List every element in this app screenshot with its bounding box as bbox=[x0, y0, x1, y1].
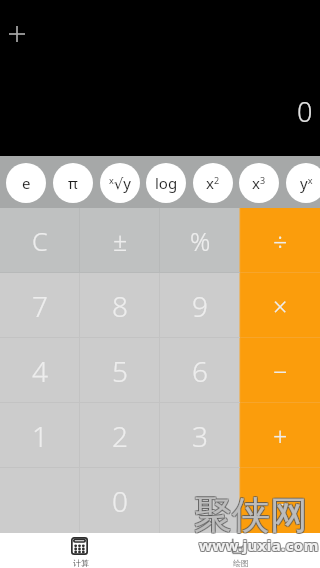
staticText: 1 bbox=[32, 417, 48, 455]
staticText: e bbox=[22, 173, 31, 193]
staticText: 聚侠网 bbox=[193, 491, 307, 539]
button[interactable]: x2 bbox=[193, 163, 233, 203]
staticText: log bbox=[155, 173, 178, 193]
button[interactable]: = bbox=[240, 468, 320, 533]
staticText: π bbox=[68, 173, 78, 193]
button[interactable]: π bbox=[53, 163, 93, 203]
button[interactable]: 1 bbox=[0, 403, 80, 468]
button[interactable]: 计算 bbox=[0, 533, 160, 568]
staticText: 3 bbox=[192, 417, 208, 455]
staticText: www.juxia.com bbox=[200, 534, 320, 554]
staticText: 0 bbox=[297, 93, 313, 130]
staticText: 0 bbox=[112, 482, 128, 520]
staticText: x√y bbox=[109, 173, 131, 193]
staticText: 5 bbox=[112, 352, 128, 390]
staticText: 2 bbox=[112, 417, 128, 455]
staticText: www.juxia.com bbox=[199, 534, 319, 554]
staticText: 7 bbox=[32, 287, 48, 325]
button[interactable]: ± bbox=[80, 208, 160, 273]
staticText: www.juxia.com bbox=[200, 536, 320, 556]
button[interactable]: x√y bbox=[100, 163, 140, 203]
staticText: 6 bbox=[192, 352, 208, 390]
button[interactable]: 0 bbox=[80, 468, 160, 533]
staticText: www.juxia.com bbox=[199, 535, 319, 555]
staticText: www.juxia.com bbox=[198, 536, 318, 556]
button[interactable]: + bbox=[240, 403, 320, 468]
staticText: C bbox=[32, 224, 48, 258]
staticText: 9 bbox=[192, 287, 208, 325]
staticText: ÷ bbox=[273, 224, 288, 258]
button[interactable]: 4 bbox=[0, 338, 80, 403]
staticText: × bbox=[273, 289, 288, 323]
button[interactable]: e bbox=[6, 163, 46, 203]
button[interactable]: 9 bbox=[160, 273, 240, 338]
button[interactable]: log bbox=[146, 163, 186, 203]
staticText: 聚侠网 bbox=[194, 490, 308, 538]
button[interactable]: 5 bbox=[80, 338, 160, 403]
button[interactable]: 6 bbox=[160, 338, 240, 403]
staticText: 4 bbox=[32, 352, 48, 390]
staticText: 聚侠网 bbox=[195, 491, 309, 539]
staticText: 8 bbox=[112, 287, 128, 325]
staticText: www.juxia.com bbox=[198, 535, 318, 555]
staticText: yx bbox=[300, 173, 313, 193]
button[interactable]: Add to history bbox=[5, 22, 28, 45]
staticText: 聚侠网 bbox=[194, 492, 308, 540]
staticText: 聚侠网 bbox=[195, 492, 309, 540]
staticText: www.juxia.com bbox=[198, 534, 318, 554]
staticText: = bbox=[273, 484, 288, 518]
staticText: ± bbox=[113, 224, 128, 258]
staticText: 计算 bbox=[73, 558, 89, 568]
button[interactable]: % bbox=[160, 208, 240, 273]
staticText: 聚侠网 bbox=[194, 491, 308, 539]
staticText: x2 bbox=[206, 173, 220, 193]
button[interactable]: 2 bbox=[80, 403, 160, 468]
button[interactable]: 8 bbox=[80, 273, 160, 338]
staticText: 绘图 bbox=[233, 558, 249, 568]
button[interactable]: yx bbox=[286, 163, 320, 203]
button[interactable]: x3 bbox=[239, 163, 279, 203]
staticText: 聚侠网 bbox=[193, 492, 307, 540]
button[interactable] bbox=[160, 468, 240, 533]
button[interactable]: − bbox=[240, 338, 320, 403]
button[interactable]: ÷ bbox=[240, 208, 320, 273]
button[interactable]: C bbox=[0, 208, 80, 273]
button[interactable]: 7 bbox=[0, 273, 80, 338]
staticText: www.juxia.com bbox=[199, 536, 319, 556]
staticText: − bbox=[273, 354, 288, 388]
staticText: % bbox=[190, 224, 211, 258]
staticText: x3 bbox=[252, 173, 266, 193]
staticText: + bbox=[273, 419, 288, 453]
staticText: www.juxia.com bbox=[200, 535, 320, 555]
staticText: 聚侠网 bbox=[193, 490, 307, 538]
button[interactable]: 绘图 bbox=[160, 533, 320, 568]
button[interactable]: × bbox=[240, 273, 320, 338]
button[interactable]: 3 bbox=[160, 403, 240, 468]
staticText: 聚侠网 bbox=[195, 490, 309, 538]
